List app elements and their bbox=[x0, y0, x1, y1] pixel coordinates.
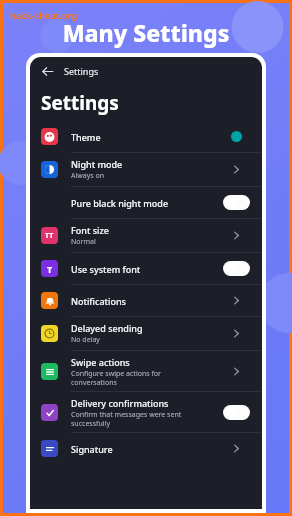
staticText: Night mode bbox=[71, 158, 123, 170]
staticText: Notifications bbox=[71, 295, 126, 307]
staticText: TT bbox=[45, 231, 54, 241]
button[interactable]: T bbox=[30, 253, 262, 284]
button[interactable]: Back bbox=[38, 62, 56, 80]
staticText: Font size bbox=[71, 224, 109, 236]
staticText: Configure swipe actions for conversation… bbox=[71, 369, 161, 387]
staticText: Theme bbox=[71, 131, 101, 143]
button[interactable]: Night mode bbox=[30, 153, 262, 186]
staticText: Normal bbox=[71, 237, 96, 247]
button[interactable]: Delivery confirmations bbox=[30, 392, 262, 432]
staticText: Delayed sending bbox=[71, 322, 143, 334]
staticText: Signature bbox=[71, 443, 113, 455]
button[interactable]: Signature bbox=[30, 433, 262, 464]
staticText: T bbox=[47, 263, 53, 275]
button[interactable]: Delayed sending bbox=[30, 317, 262, 350]
button[interactable]: Notifications bbox=[30, 285, 262, 316]
staticText: Pure black night mode bbox=[71, 197, 169, 209]
staticText: Swipe actions bbox=[71, 356, 130, 368]
button[interactable]: Pure black night mode bbox=[30, 187, 262, 218]
staticText: Always on bbox=[71, 171, 105, 181]
button[interactable]: Swipe actions bbox=[30, 351, 262, 391]
button[interactable]: TT bbox=[30, 219, 262, 252]
staticText: Delivery confirmations bbox=[71, 397, 169, 409]
staticText: Many Settings bbox=[3, 17, 289, 48]
staticText: Confirm that messages were sent successf… bbox=[71, 410, 182, 428]
staticText: hack-cheat.org bbox=[10, 9, 78, 21]
staticText: Settings bbox=[41, 90, 119, 116]
staticText: Use system font bbox=[71, 263, 141, 275]
staticText: No delay bbox=[71, 335, 100, 345]
button[interactable]: Theme bbox=[30, 121, 262, 152]
staticText: Settings bbox=[64, 65, 99, 77]
